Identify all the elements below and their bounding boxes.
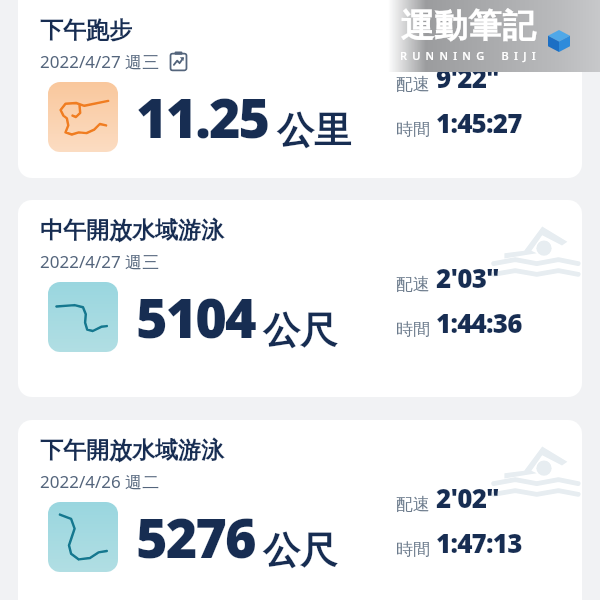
staticText: 配速 [396, 494, 430, 515]
staticText: 1:45:27 [436, 105, 522, 140]
staticText: 公里 [277, 107, 351, 154]
staticText: 公尺 [263, 527, 337, 574]
staticText: 5276 [136, 500, 255, 574]
staticText: 時間 [396, 539, 430, 560]
button[interactable]: View activity stats [168, 51, 189, 72]
staticText: 5104 [136, 280, 255, 354]
staticText: 2'02" [436, 480, 499, 515]
staticText: 配速 [396, 74, 430, 95]
button[interactable]: 中午開放水域游泳 [18, 200, 582, 397]
staticText: 2022/4/27 週三 [40, 250, 160, 273]
button[interactable]: 下午跑步 [18, 0, 582, 178]
staticText: R U N N I N G B I J I [400, 48, 537, 63]
staticText: 運動筆記 [400, 5, 536, 47]
staticText: 時間 [396, 119, 430, 140]
staticText: 11.25 [136, 80, 269, 154]
staticText: 9'22" [436, 60, 499, 95]
staticText: 中午開放水域游泳 [40, 216, 224, 245]
button[interactable]: 下午開放水域游泳 [18, 420, 582, 600]
staticText: 配速 [396, 274, 430, 295]
staticText: 時間 [396, 319, 430, 340]
staticText: 公尺 [263, 307, 337, 354]
staticText: 2'03" [436, 260, 499, 295]
staticText: 下午跑步 [40, 16, 132, 45]
staticText: 2022/4/26 週二 [40, 470, 160, 493]
staticText: 下午開放水域游泳 [40, 436, 224, 465]
staticText: 1:47:13 [436, 525, 522, 560]
staticText: 1:44:36 [436, 305, 522, 340]
staticText: 2022/4/27 週三 [40, 50, 160, 73]
